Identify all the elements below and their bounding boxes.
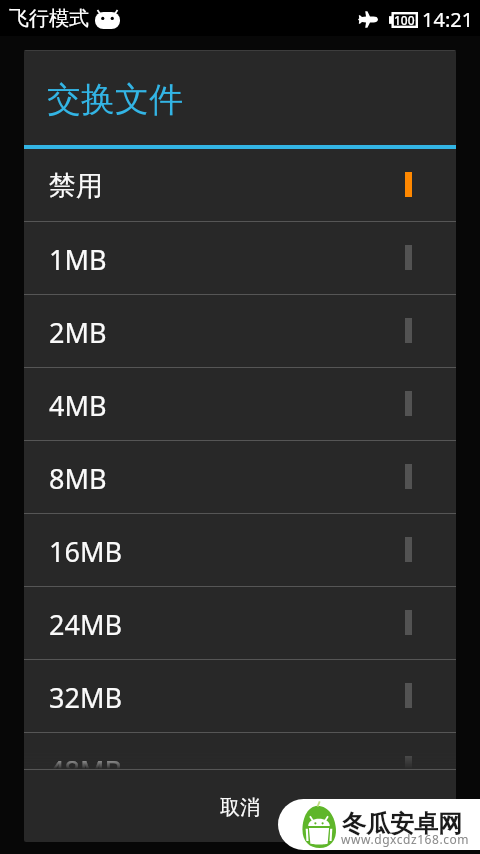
staticText: 8MB [49,460,107,497]
staticText: 14:21 [422,6,474,33]
other: Airplane mode [358,11,378,28]
staticText: 冬瓜安卓网 [342,809,462,839]
staticText: 100 [394,12,415,28]
staticText: www.dgxcdz168.com [341,831,470,847]
staticText: 交换文件 [47,78,183,121]
other: Battery 100 percent [389,12,418,28]
button[interactable]: 4MB [24,368,456,440]
button[interactable]: 取消 [24,770,456,842]
button[interactable]: 32MB [24,660,456,732]
staticText: 禁用 [49,169,103,203]
staticText: 16MB [49,533,122,570]
button[interactable]: 8MB [24,441,456,513]
staticText: 1MB [49,241,107,278]
button[interactable]: 24MB [24,587,456,659]
button[interactable]: 禁用 [24,149,456,221]
button[interactable]: 48MB [24,733,456,769]
other: Android [95,12,120,29]
button[interactable]: 1MB [24,222,456,294]
staticText: 4MB [49,387,107,424]
staticText: 24MB [49,606,122,643]
staticText: 32MB [49,679,122,716]
staticText: 取消 [220,795,260,820]
button[interactable]: 2MB [24,295,456,367]
staticText: 48MB [49,752,122,769]
button[interactable]: 16MB [24,514,456,586]
staticText: 飞行模式 [9,6,89,31]
staticText: 2MB [49,314,107,351]
